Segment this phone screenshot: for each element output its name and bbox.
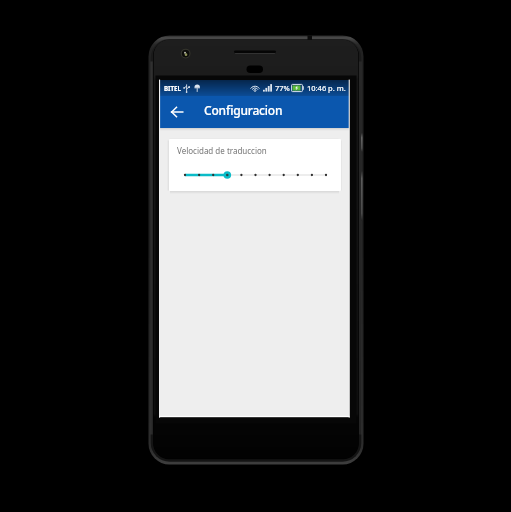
staticText: Configuracion: [204, 102, 283, 118]
button[interactable]: Back: [166, 101, 188, 123]
staticText: Velocidad de traduccion: [177, 145, 267, 156]
staticText: 77%: [275, 83, 290, 93]
staticText: 10:46 p. m.: [307, 83, 346, 93]
staticText: BITEL: [164, 84, 182, 92]
button[interactable]: Velocidad de traduccion: [169, 139, 341, 191]
